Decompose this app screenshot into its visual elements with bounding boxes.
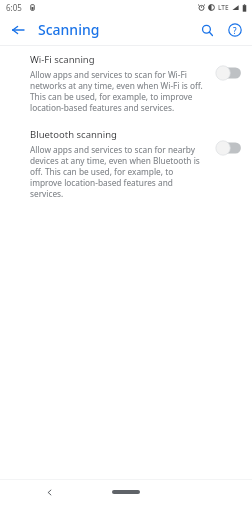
staticText: Allow apps and services to scan for near… xyxy=(30,144,204,199)
button[interactable]: Back xyxy=(4,16,32,44)
staticText: Bluetooth scanning xyxy=(30,128,117,141)
staticText: Allow apps and services to scan for Wi-F… xyxy=(30,69,204,113)
button[interactable]: Help xyxy=(221,16,249,44)
button[interactable]: Home xyxy=(104,482,148,502)
button[interactable]: Toggle Bluetooth scanning xyxy=(212,138,246,158)
button[interactable]: Wi-Fi scanning xyxy=(0,53,252,113)
staticText: 6:05 xyxy=(6,2,22,13)
button[interactable]: Search xyxy=(193,16,221,44)
staticText: Wi-Fi scanning xyxy=(30,53,95,66)
button[interactable]: Bluetooth scanning xyxy=(0,128,252,199)
button[interactable]: Toggle Wi-Fi scanning xyxy=(212,63,246,83)
staticText: Scanning xyxy=(38,20,100,39)
staticText: LTE xyxy=(218,3,229,12)
button[interactable]: Back xyxy=(39,482,59,502)
staticText: ? xyxy=(233,25,237,36)
